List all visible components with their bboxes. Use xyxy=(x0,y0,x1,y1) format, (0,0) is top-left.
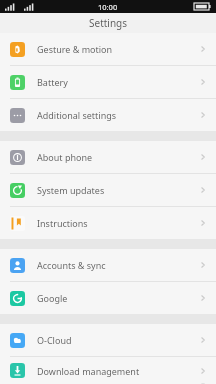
button[interactable]: System updates xyxy=(0,174,216,207)
button[interactable]: Instructions xyxy=(0,207,216,239)
button[interactable]: Download management xyxy=(0,357,216,384)
staticText: Gesture & motion xyxy=(37,43,198,55)
button[interactable]: Gesture & motion xyxy=(0,33,216,66)
staticText: System updates xyxy=(37,184,198,196)
staticText: About phone xyxy=(37,151,198,163)
staticText: Google xyxy=(37,292,198,304)
staticText: O-Cloud xyxy=(37,334,198,346)
staticText: Download management xyxy=(37,365,198,377)
button[interactable]: Additional settings xyxy=(0,99,216,131)
button[interactable]: O-Cloud xyxy=(0,324,216,357)
button[interactable]: Accounts & sync xyxy=(0,249,216,282)
staticText: Settings xyxy=(89,16,128,30)
staticText: Battery xyxy=(37,76,198,88)
button[interactable]: About phone xyxy=(0,141,216,174)
staticText: Additional settings xyxy=(37,109,198,121)
staticText: Accounts & sync xyxy=(37,259,198,271)
staticText: Instructions xyxy=(37,217,198,229)
button[interactable]: Battery xyxy=(0,66,216,99)
staticText: 10:00 xyxy=(98,2,118,12)
button[interactable]: Google xyxy=(0,282,216,314)
